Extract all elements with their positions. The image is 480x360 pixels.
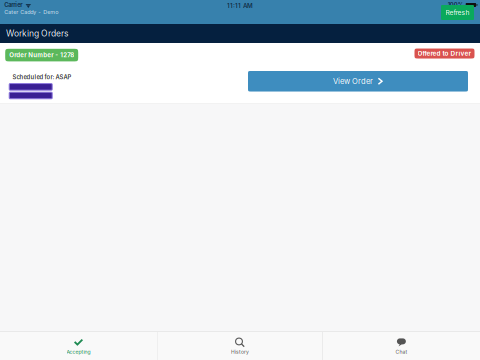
staticText: 100% bbox=[448, 1, 464, 8]
staticText: History bbox=[231, 349, 249, 355]
button[interactable]: Chat bbox=[323, 332, 480, 360]
staticText: Cater Caddy - Demo bbox=[4, 9, 58, 15]
button[interactable]: View Order bbox=[248, 71, 468, 91]
staticText: Chat bbox=[395, 349, 407, 355]
button[interactable]: Order Number - 1278 bbox=[5, 49, 78, 61]
staticText: Scheduled for: ASAP bbox=[12, 73, 71, 81]
staticText: Refresh bbox=[445, 8, 469, 17]
staticText: Offered to Driver bbox=[417, 50, 471, 57]
button[interactable]: Refresh bbox=[441, 5, 474, 20]
staticText: View Order bbox=[333, 77, 373, 86]
staticText: Carrier bbox=[4, 1, 22, 8]
button[interactable]: Accepting bbox=[0, 332, 157, 360]
staticText: Order Number - 1278 bbox=[9, 51, 74, 59]
staticText: Working Orders bbox=[6, 28, 69, 39]
button[interactable]: History bbox=[158, 332, 322, 360]
staticText: Accepting bbox=[66, 349, 90, 355]
staticText: 11:11 AM bbox=[227, 2, 253, 9]
